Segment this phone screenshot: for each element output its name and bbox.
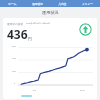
button[interactable]: 入出金 (50, 0, 75, 7)
button[interactable]: 運用状況 (25, 0, 50, 7)
staticText: 436 (7, 26, 28, 42)
button[interactable]: 資産が増加 (79, 23, 92, 36)
staticText: 入出金 (58, 2, 67, 5)
button[interactable]: メニュー (75, 0, 100, 7)
staticText: 600 (12, 45, 16, 48)
staticText: 円 (28, 36, 32, 41)
staticText: 5/4 (33, 89, 37, 92)
staticText: 運用状況 (32, 2, 43, 5)
staticText: ホーム (8, 2, 17, 5)
button[interactable]: ホーム (0, 0, 25, 7)
staticText: 2020年5月20日 13時00分 (26, 22, 51, 25)
staticText: 運用状況 (42, 10, 59, 15)
button[interactable]: 期間選択 (21, 95, 32, 97)
staticText: 400 (12, 57, 16, 60)
staticText: 運用中の資産 (7, 22, 24, 25)
staticText: 0 (14, 82, 16, 85)
staticText: 200 (12, 70, 16, 73)
staticText: メニュー (82, 2, 93, 5)
staticText: 5/18 (80, 89, 85, 92)
